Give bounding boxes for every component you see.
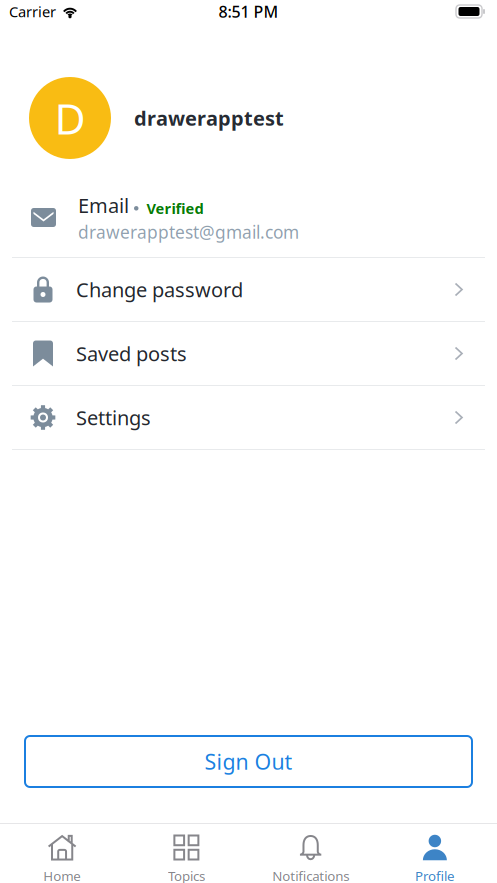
button[interactable]: Settings: [0, 386, 497, 449]
staticText: Change password: [76, 276, 243, 303]
staticText: drawerapptest: [134, 105, 284, 131]
button[interactable]: Email: [0, 185, 497, 257]
staticText: Settings: [76, 404, 151, 431]
staticText: 8:51 PM: [218, 1, 278, 22]
staticText: Notifications: [272, 867, 349, 883]
button[interactable]: Sign Out: [25, 736, 472, 787]
staticText: drawerapptest@gmail.com: [78, 221, 299, 244]
staticText: Topics: [168, 867, 205, 883]
staticText: Home: [43, 867, 81, 883]
staticText: Sign Out: [204, 747, 292, 776]
button[interactable]: Topics: [124, 824, 248, 883]
staticText: D: [54, 90, 85, 146]
staticText: Verified: [146, 199, 203, 218]
button[interactable]: Change password: [0, 258, 497, 321]
staticText: Saved posts: [76, 340, 187, 367]
staticText: Carrier: [9, 2, 56, 21]
staticText: Email: [78, 192, 129, 219]
staticText: Profile: [415, 867, 455, 883]
button[interactable]: Profile: [373, 824, 497, 883]
button[interactable]: Home: [0, 824, 124, 883]
button[interactable]: Saved posts: [0, 322, 497, 385]
button[interactable]: Notifications: [248, 824, 373, 883]
